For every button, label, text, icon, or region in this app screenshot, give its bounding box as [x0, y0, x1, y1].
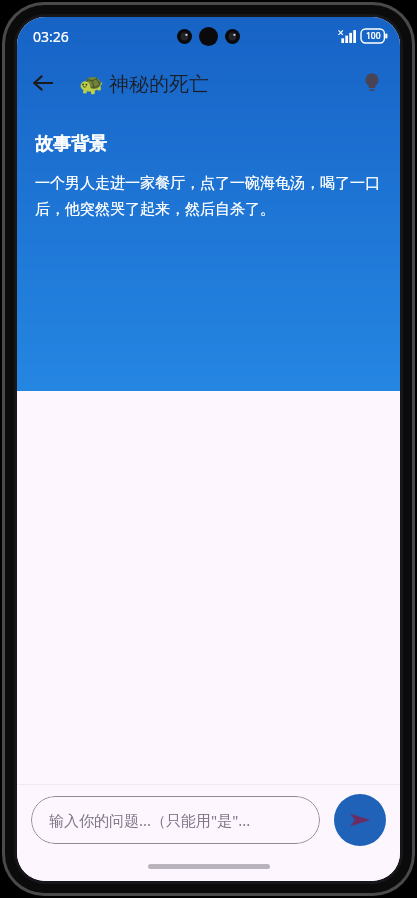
button[interactable]: Send — [334, 794, 386, 846]
button[interactable]: 输入你的问题...（只能用"是"... — [31, 796, 320, 844]
staticText: 🐢 神秘的死亡 — [79, 70, 350, 97]
staticText: 故事背景 — [35, 133, 107, 156]
button[interactable]: Back — [21, 61, 65, 105]
staticText: 100 — [366, 30, 381, 42]
staticText: 03:26 — [33, 27, 69, 46]
button[interactable]: Hint — [350, 61, 394, 105]
staticText: 输入你的问题...（只能用"是"... — [49, 810, 251, 830]
staticText: 一个男人走进一家餐厅，点了一碗海龟汤，喝了一口后，他突然哭了起来，然后自杀了。 — [35, 174, 382, 219]
